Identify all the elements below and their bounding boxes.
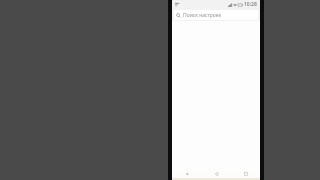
button[interactable]: Back <box>172 170 202 178</box>
staticText: 10:28 <box>244 1 257 8</box>
button[interactable]: Recents <box>231 170 260 178</box>
button[interactable]: Home <box>202 170 231 178</box>
button[interactable]: Поиск настроек <box>174 10 258 20</box>
staticText: Поиск настроек <box>183 12 222 19</box>
